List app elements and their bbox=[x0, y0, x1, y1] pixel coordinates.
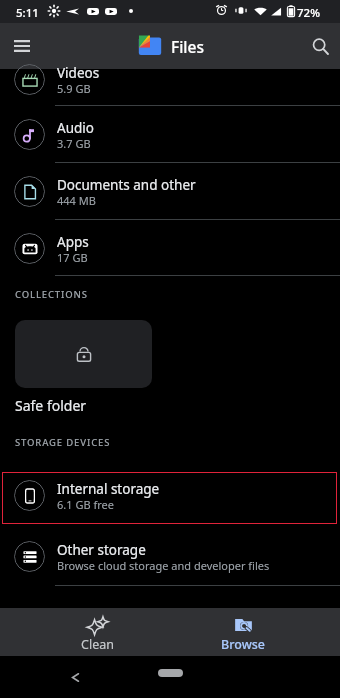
staticText: 17 GB bbox=[57, 250, 88, 265]
button[interactable]: Browse bbox=[163, 608, 323, 656]
staticText: Internal storage bbox=[57, 480, 160, 498]
staticText: 5:11 bbox=[16, 5, 39, 21]
button[interactable]: Audio bbox=[0, 106, 340, 161]
staticText: Audio bbox=[57, 119, 94, 137]
button[interactable]: Clean bbox=[17, 608, 177, 656]
button[interactable]: Search bbox=[302, 28, 338, 64]
staticText: Safe folder bbox=[15, 396, 87, 415]
button[interactable]: Other storage bbox=[0, 528, 340, 583]
button[interactable]: Back bbox=[62, 664, 88, 690]
staticText: 6.1 GB free bbox=[57, 497, 114, 512]
staticText: Apps bbox=[57, 233, 89, 251]
staticText: Browse cloud storage and developer files bbox=[57, 558, 270, 573]
button[interactable]: Safe folder bbox=[15, 320, 152, 388]
staticText: 5.9 GB bbox=[57, 81, 91, 96]
staticText: Browse bbox=[221, 636, 265, 653]
button[interactable]: Videos bbox=[0, 51, 340, 106]
staticText: Files bbox=[171, 36, 204, 57]
staticText: 72% bbox=[297, 5, 320, 21]
staticText: Other storage bbox=[57, 541, 146, 559]
staticText: Clean bbox=[81, 636, 114, 653]
button[interactable]: Apps bbox=[0, 220, 340, 275]
staticText: 3.7 GB bbox=[57, 136, 91, 151]
staticText: STORAGE DEVICES bbox=[15, 436, 111, 449]
button[interactable]: Internal storage bbox=[0, 467, 340, 522]
staticText: 444 MB bbox=[57, 193, 96, 208]
staticText: Documents and other bbox=[57, 176, 196, 194]
staticText: Videos bbox=[57, 64, 100, 82]
button[interactable]: Documents and other bbox=[0, 163, 340, 218]
button[interactable]: Open navigation menu bbox=[4, 28, 40, 64]
staticText: COLLECTIONS bbox=[15, 288, 88, 301]
button[interactable]: Home bbox=[158, 669, 183, 677]
